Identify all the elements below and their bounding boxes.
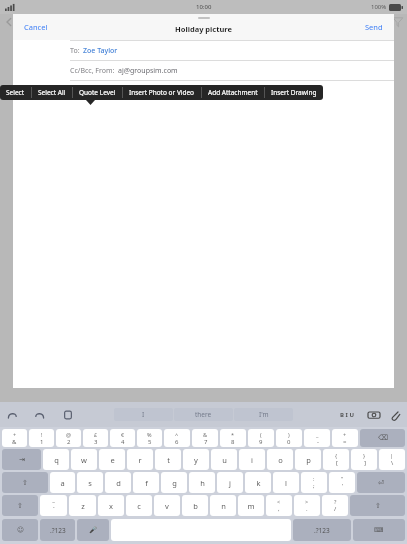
button[interactable]: l [273, 472, 299, 493]
button[interactable]: r [127, 449, 153, 470]
button[interactable]: Paste [62, 409, 74, 421]
button[interactable]: t [155, 449, 181, 470]
button[interactable]: Attach [389, 409, 401, 421]
staticText: Select All [38, 88, 66, 97]
button[interactable]: Camera [368, 409, 380, 421]
button[interactable]: Insert Photo or Video [123, 85, 201, 100]
button[interactable]: e [99, 449, 125, 470]
staticText: Insert Photo or Video [129, 88, 195, 97]
button[interactable]: s [77, 472, 103, 493]
button[interactable]: i [239, 449, 265, 470]
button[interactable]: k [245, 472, 271, 493]
button[interactable]: | [379, 449, 405, 470]
button[interactable]: z [69, 495, 96, 516]
button[interactable]: q [43, 449, 69, 470]
button[interactable]: ) [276, 429, 302, 447]
button[interactable]: Insert Drawing [265, 85, 323, 100]
button[interactable]: ⇧ [2, 472, 48, 493]
button[interactable]: w [71, 449, 97, 470]
button[interactable]: Add Attachment [202, 85, 264, 100]
button[interactable]: ⇧ [350, 495, 405, 516]
button[interactable]: d [105, 472, 131, 493]
staticText: { [335, 452, 338, 459]
button[interactable]: j [217, 472, 243, 493]
button[interactable]: x [98, 495, 124, 516]
button[interactable]: ⇧ [2, 495, 38, 516]
button[interactable]: .?123 [40, 519, 75, 541]
button[interactable]: To: [13, 41, 394, 60]
button[interactable]: > [294, 495, 320, 516]
button[interactable]: ( [248, 429, 274, 447]
button[interactable]: o [267, 449, 293, 470]
button[interactable]: b [182, 495, 208, 516]
button[interactable]: g [161, 472, 187, 493]
button[interactable]: I'm [234, 408, 293, 421]
button[interactable]: £ [83, 429, 108, 447]
staticText: ( [260, 431, 262, 438]
staticText: ? [334, 498, 337, 505]
button[interactable]: B I U [338, 409, 356, 421]
staticText: Holiday picture [175, 24, 233, 34]
button[interactable]: : [301, 472, 327, 493]
button[interactable]: & [192, 429, 218, 447]
button[interactable]: Emoji [2, 519, 38, 541]
button[interactable]: Cc/Bcc, From: [13, 61, 394, 80]
button[interactable]: + [332, 429, 358, 447]
button[interactable]: I [114, 408, 173, 421]
staticText: ` [53, 505, 55, 513]
button[interactable]: % [137, 429, 162, 447]
staticText: w [81, 455, 87, 465]
button[interactable]: { [323, 449, 349, 470]
button[interactable]: p [295, 449, 321, 470]
button[interactable]: € [110, 429, 135, 447]
button[interactable]: } [351, 449, 377, 470]
staticText: Hi [72, 89, 81, 100]
button[interactable]: f [133, 472, 159, 493]
button[interactable]: v [154, 495, 180, 516]
staticText: 2 [67, 438, 71, 446]
button[interactable]: .?123 [293, 519, 351, 541]
button[interactable]: there [174, 408, 233, 421]
button[interactable]: ^ [164, 429, 190, 447]
button[interactable]: Send [365, 22, 383, 32]
button[interactable]: Quote Level [73, 85, 122, 100]
button[interactable]: c [126, 495, 152, 516]
button[interactable]: " [329, 472, 355, 493]
staticText: t [167, 455, 170, 465]
button[interactable]: Back [2, 15, 16, 29]
button[interactable]: h [189, 472, 215, 493]
button[interactable]: y [183, 449, 209, 470]
button[interactable]: m [238, 495, 264, 516]
button[interactable]: Redo [34, 409, 46, 421]
button[interactable]: + [2, 429, 27, 447]
button[interactable]: a [50, 472, 75, 493]
staticText: = [343, 438, 347, 446]
button[interactable]: u [211, 449, 237, 470]
button[interactable]: < [266, 495, 292, 516]
button[interactable]: n [210, 495, 236, 516]
staticText: ⌨ [374, 526, 384, 534]
button[interactable]: Select All [32, 85, 72, 100]
button[interactable]: ⏎ [357, 472, 405, 493]
button[interactable]: Dictation [77, 519, 109, 541]
button[interactable]: ~ [40, 495, 67, 516]
staticText: i [251, 455, 253, 465]
button[interactable]: _ [304, 429, 330, 447]
staticText: 8 [231, 438, 235, 446]
staticText: x [109, 501, 113, 511]
button[interactable]: @ [56, 429, 81, 447]
button[interactable]: Cancel [24, 22, 48, 32]
button[interactable]: ⇥ [2, 449, 41, 470]
button[interactable]: Select [0, 85, 31, 100]
button[interactable]: Undo [6, 409, 18, 421]
staticText: & [12, 438, 17, 446]
button[interactable]: ? [322, 495, 348, 516]
button[interactable]: Hide keyboard [353, 519, 405, 541]
staticText: _ [316, 431, 319, 438]
button[interactable]: * [220, 429, 246, 447]
button[interactable]: ⌫ [360, 429, 405, 447]
button[interactable]: ! [29, 429, 54, 447]
staticText: - [317, 438, 319, 446]
staticText: 🎤 [89, 526, 98, 534]
